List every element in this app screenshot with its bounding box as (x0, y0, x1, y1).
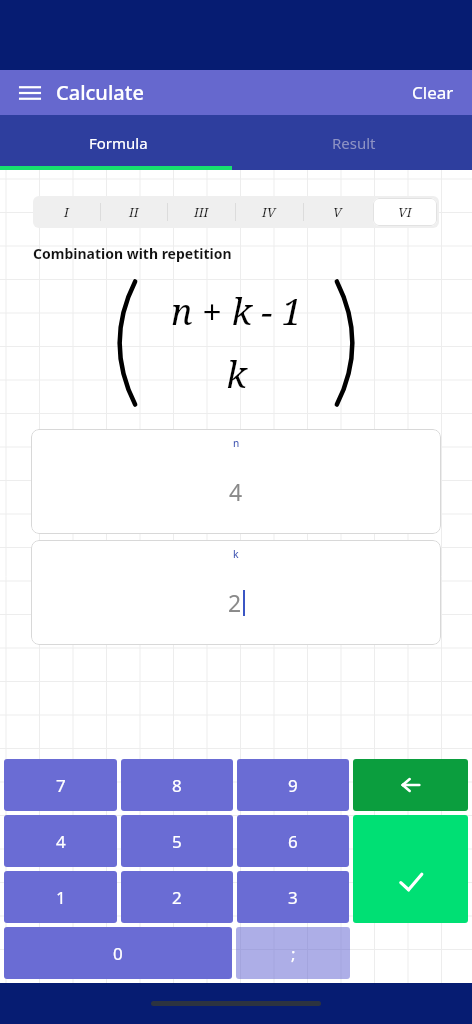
staticText: 1 (56, 886, 66, 909)
button[interactable]: Backspace (353, 759, 468, 811)
button[interactable]: Open navigation menu (10, 73, 50, 113)
staticText: k (233, 547, 239, 561)
button[interactable]: 5 (121, 815, 233, 867)
staticText: Calculate (56, 79, 144, 106)
button[interactable]: 2 (121, 871, 233, 923)
staticText: k (226, 350, 247, 399)
staticText: ; (291, 942, 296, 965)
button[interactable]: Clear (394, 73, 472, 112)
staticText: 6 (288, 830, 298, 853)
button[interactable]: 8 (121, 759, 233, 811)
button[interactable]: 9 (237, 759, 349, 811)
button[interactable]: ; (236, 927, 350, 979)
staticText: VI (398, 203, 412, 221)
staticText: 5 (172, 830, 182, 853)
staticText: Combination with repetition (33, 244, 232, 263)
button[interactable]: VI (371, 196, 439, 228)
button[interactable]: 4 (4, 815, 117, 867)
staticText: n + k − 1 (171, 287, 302, 336)
staticText: IV (262, 203, 276, 221)
button[interactable]: II (100, 196, 167, 228)
staticText: 8 (172, 774, 182, 797)
button[interactable]: 0 (4, 927, 232, 979)
button[interactable]: n (31, 429, 441, 534)
staticText: Result (332, 133, 376, 153)
button[interactable]: 1 (4, 871, 117, 923)
button[interactable]: I (33, 196, 100, 228)
button[interactable]: Confirm (353, 815, 468, 923)
staticText: 4 (229, 476, 243, 507)
button[interactable]: Formula (0, 115, 236, 170)
staticText: 2 (172, 886, 182, 909)
button[interactable]: k (31, 540, 441, 645)
staticText: Clear (412, 81, 454, 104)
button[interactable]: 6 (237, 815, 349, 867)
button[interactable]: Result (236, 115, 472, 170)
staticText: 9 (288, 774, 298, 797)
staticText: II (129, 203, 139, 221)
staticText: n (233, 436, 240, 450)
staticText: Formula (89, 133, 148, 153)
staticText: 2 (228, 587, 242, 618)
staticText: 3 (288, 886, 298, 909)
staticText: III (194, 203, 209, 221)
button[interactable]: V (303, 196, 371, 228)
button[interactable]: III (167, 196, 235, 228)
button[interactable]: 3 (237, 871, 349, 923)
staticText: V (333, 203, 342, 221)
staticText: 0 (113, 942, 123, 965)
staticText: 4 (56, 830, 66, 853)
staticText: I (64, 203, 69, 221)
staticText: 7 (56, 774, 66, 797)
button[interactable]: 7 (4, 759, 117, 811)
button[interactable]: IV (235, 196, 303, 228)
